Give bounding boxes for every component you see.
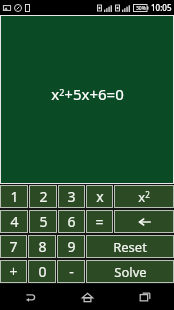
staticText: = [95, 212, 104, 231]
button[interactable]: + [0, 260, 27, 283]
staticText: x2 [138, 188, 150, 206]
button[interactable]: 4 [0, 210, 28, 233]
button[interactable]: 5 [29, 210, 57, 233]
staticText: - [69, 262, 74, 281]
staticText: x [96, 187, 104, 206]
staticText: 2 [39, 187, 48, 206]
button[interactable]: 9 [57, 235, 85, 258]
staticText: 7 [9, 237, 18, 256]
button[interactable]: 8 [28, 235, 56, 258]
button[interactable]: Reset [86, 235, 174, 258]
staticText: Reset [113, 238, 147, 256]
staticText: 0 [38, 262, 47, 281]
button[interactable]: Home [58, 284, 116, 310]
staticText: 5 [39, 212, 48, 231]
button[interactable]: x [86, 185, 113, 208]
staticText: x2+5x+6=0 [51, 84, 124, 104]
button[interactable]: 6 [58, 210, 85, 233]
button[interactable]: 7 [0, 235, 27, 258]
staticText: 9 [67, 237, 76, 256]
button[interactable]: 2 [29, 185, 57, 208]
staticText: 3 [67, 187, 76, 206]
button[interactable]: = [86, 210, 113, 233]
staticText: Solve [114, 263, 147, 281]
button[interactable]: Solve [86, 260, 174, 283]
staticText: 4 [10, 212, 19, 231]
button[interactable]: Back [0, 284, 58, 310]
button[interactable]: Recent apps [116, 284, 174, 310]
button[interactable]: Backspace [114, 210, 174, 233]
button[interactable]: 3 [58, 185, 85, 208]
staticText: 6 [67, 212, 76, 231]
staticText: 1 [10, 187, 19, 206]
button[interactable]: 0 [28, 260, 56, 283]
button[interactable]: 1 [0, 185, 28, 208]
staticText: 8 [38, 237, 47, 256]
button[interactable]: - [57, 260, 85, 283]
button[interactable]: x squared [114, 185, 174, 208]
staticText: + [9, 262, 18, 281]
staticText: 30% [136, 5, 146, 12]
staticText: 10:05 [151, 2, 172, 13]
